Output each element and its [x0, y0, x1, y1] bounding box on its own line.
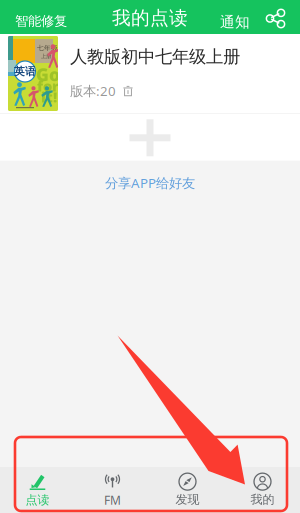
button[interactable]: 通知 — [211, 5, 259, 39]
button[interactable]: 发现 — [150, 467, 225, 513]
staticText: 通知 — [220, 13, 250, 31]
staticText: 版本:20 — [70, 82, 116, 100]
staticText: it! — [41, 87, 57, 106]
button[interactable]: 我的 — [225, 467, 300, 513]
button[interactable]: 智能修复 — [1, 5, 81, 37]
staticText: 分享APP给好友 — [105, 174, 195, 192]
staticText: 人教版初中七年级上册 — [70, 46, 240, 67]
staticText: 智能修复 — [15, 13, 67, 29]
staticText: 我的 — [250, 492, 274, 507]
button[interactable]: 点读 — [0, 467, 75, 513]
button[interactable]: Add book — [0, 114, 300, 161]
staticText: 英语 — [14, 65, 36, 78]
button[interactable]: FM — [75, 467, 150, 513]
staticText: 七年级 — [37, 44, 58, 52]
button[interactable]: 分享APP给好友 — [0, 161, 300, 205]
staticText: 上册 — [41, 53, 51, 60]
staticText: FM — [104, 492, 121, 508]
staticText: 发现 — [175, 492, 199, 507]
button[interactable]: 七年级 — [0, 34, 300, 113]
button[interactable]: Share — [259, 2, 292, 35]
staticText: 点读 — [25, 493, 49, 507]
staticText: 我的点读 — [112, 6, 188, 29]
staticText: for — [37, 76, 59, 95]
staticText: Go — [36, 63, 60, 86]
